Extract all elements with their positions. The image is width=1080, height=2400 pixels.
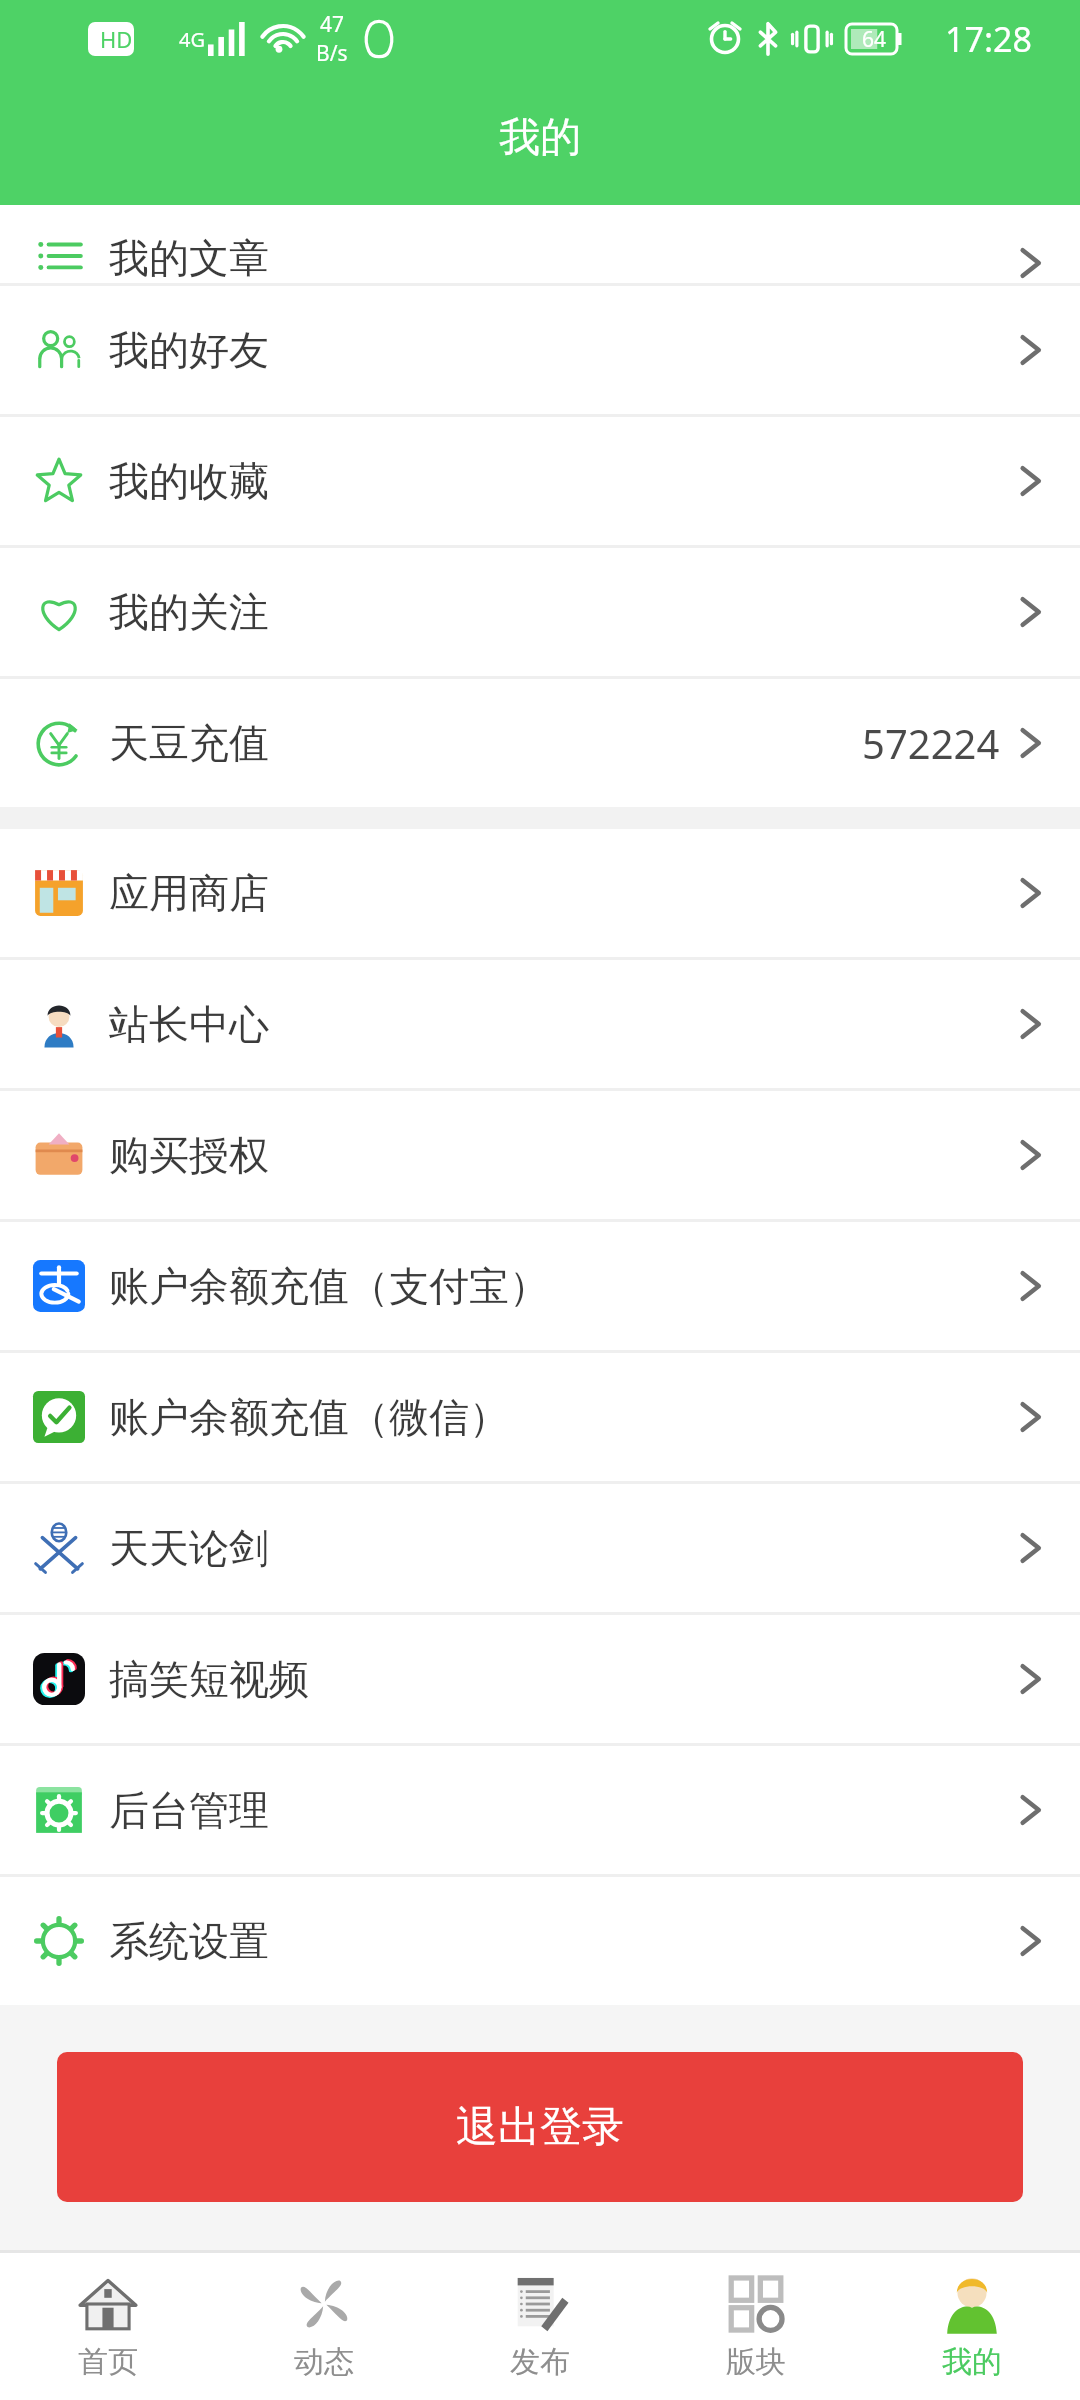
button[interactable]: 账户余额充值（支付宝） [0, 1222, 1080, 1350]
button[interactable]: 版块 [648, 2253, 864, 2400]
button[interactable]: 系统设置 [0, 1877, 1080, 2005]
button[interactable]: 我的 [864, 2253, 1080, 2400]
button[interactable]: 首页 [0, 2253, 216, 2400]
button[interactable]: 我的好友 [0, 286, 1080, 414]
button[interactable]: 账户余额充值（微信） [0, 1353, 1080, 1481]
staticText: 账户余额充值（支付宝） [109, 1261, 549, 1311]
staticText: 发布 [510, 2343, 570, 2381]
staticText: 天天论剑 [109, 1523, 269, 1573]
staticText: 后台管理 [109, 1785, 269, 1835]
button[interactable]: 退出登录 [57, 2052, 1023, 2202]
button[interactable]: 我的关注 [0, 548, 1080, 676]
staticText: 账户余额充值（微信） [109, 1392, 509, 1442]
staticText: 572224 [862, 716, 1000, 770]
staticText: 首页 [78, 2343, 138, 2381]
staticText: 我的收藏 [109, 456, 269, 506]
staticText: 购买授权 [109, 1130, 269, 1180]
staticText: 我的关注 [109, 587, 269, 637]
staticText: 退出登录 [456, 2101, 624, 2154]
staticText: 我的文章 [109, 233, 269, 283]
button[interactable]: 天豆充值 [0, 679, 1080, 807]
staticText: 64 [862, 25, 887, 54]
staticText: HD [100, 24, 133, 54]
staticText: 搞笑短视频 [109, 1654, 309, 1704]
staticText: 我的 [942, 2343, 1002, 2381]
button[interactable]: 我的文章 [0, 205, 1080, 283]
staticText: B/s [316, 39, 348, 68]
staticText: 站长中心 [109, 999, 269, 1049]
button[interactable]: 动态 [216, 2253, 432, 2400]
staticText: 17:28 [945, 16, 1032, 62]
staticText: 动态 [294, 2343, 354, 2381]
staticText: 天豆充值 [109, 718, 269, 768]
staticText: 系统设置 [109, 1916, 269, 1966]
button[interactable]: 购买授权 [0, 1091, 1080, 1219]
button[interactable]: 站长中心 [0, 960, 1080, 1088]
staticText: 47 [320, 10, 345, 39]
staticText: 版块 [726, 2343, 786, 2381]
staticText: 我的 [499, 112, 581, 164]
staticText: 应用商店 [109, 868, 269, 918]
staticText: 我的好友 [109, 325, 269, 375]
button[interactable]: 我的收藏 [0, 417, 1080, 545]
button[interactable]: 发布 [432, 2253, 648, 2400]
button[interactable]: 应用商店 [0, 829, 1080, 957]
staticText: 4G [179, 26, 205, 53]
button[interactable]: 搞笑短视频 [0, 1615, 1080, 1743]
button[interactable]: 天天论剑 [0, 1484, 1080, 1612]
button[interactable]: 后台管理 [0, 1746, 1080, 1874]
